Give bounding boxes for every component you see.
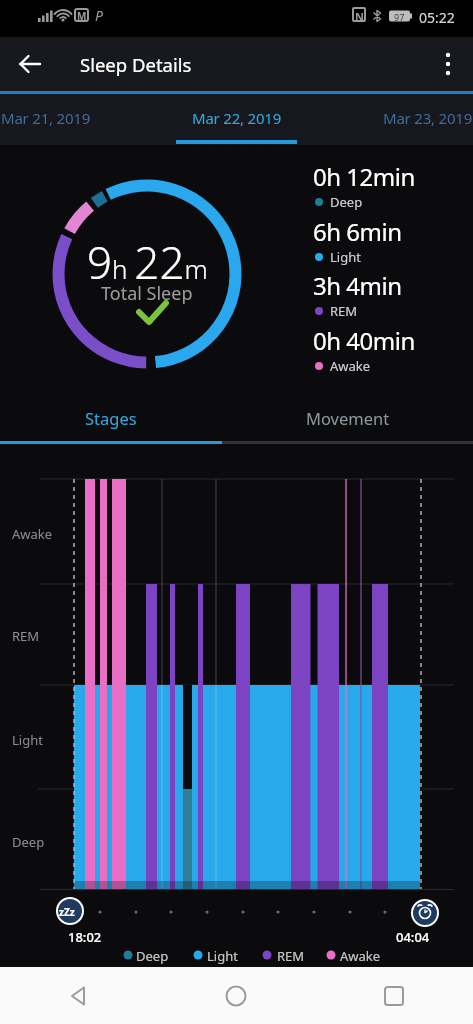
- staticText: Mar 21, 2019: [1, 108, 91, 128]
- staticText: 18:02: [68, 928, 102, 946]
- staticText: Deep: [12, 833, 45, 851]
- staticText: 04:04: [396, 928, 430, 946]
- staticText: Mar 23, 2019: [383, 108, 473, 128]
- staticText: Light: [330, 248, 361, 266]
- button[interactable]: [8, 42, 52, 86]
- staticText: 6h 6min: [313, 215, 402, 248]
- staticText: Movement: [306, 407, 390, 429]
- staticText: Total Sleep: [101, 281, 193, 306]
- staticText: 05:22: [419, 8, 455, 27]
- staticText: Awake: [340, 947, 381, 965]
- button[interactable]: Stages: [0, 395, 222, 441]
- button[interactable]: [0, 967, 157, 1024]
- staticText: P: [95, 6, 103, 25]
- staticText: REM: [12, 627, 40, 645]
- staticText: REM: [330, 302, 358, 320]
- staticText: Mar 22, 2019: [192, 108, 282, 128]
- button[interactable]: [430, 46, 466, 82]
- staticText: 97: [394, 11, 405, 23]
- staticText: Deep: [330, 193, 363, 211]
- button[interactable]: [315, 967, 473, 1024]
- button[interactable]: Mar 23, 2019: [378, 94, 473, 141]
- button[interactable]: [157, 967, 315, 1024]
- staticText: N: [355, 9, 364, 24]
- staticText: Awake: [330, 357, 371, 375]
- staticText: Light: [12, 731, 43, 749]
- staticText: Awake: [12, 525, 53, 543]
- staticText: zZz: [59, 905, 75, 919]
- button[interactable]: Movement: [222, 395, 473, 441]
- staticText: Deep: [136, 947, 169, 965]
- staticText: Stages: [85, 407, 137, 429]
- staticText: Light: [207, 947, 238, 965]
- staticText: 9h 22m: [87, 232, 208, 292]
- button[interactable]: Mar 22, 2019: [176, 94, 297, 141]
- staticText: M: [77, 9, 87, 23]
- staticText: 0h 40min: [313, 324, 415, 357]
- staticText: REM: [277, 947, 305, 965]
- staticText: 3h 4min: [313, 269, 402, 302]
- staticText: Sleep Details: [80, 52, 192, 77]
- staticText: 0h 12min: [313, 160, 415, 193]
- button[interactable]: Mar 21, 2019: [0, 94, 96, 141]
